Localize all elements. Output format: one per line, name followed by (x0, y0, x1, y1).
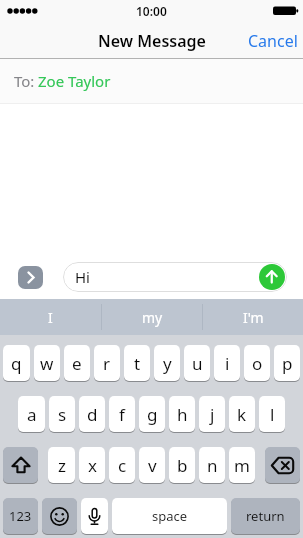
staticText: a (27, 403, 37, 426)
button[interactable] (265, 447, 300, 483)
button[interactable]: p (274, 345, 300, 381)
button[interactable]: k (229, 396, 255, 432)
button[interactable] (81, 498, 108, 534)
button[interactable]: Cancel (240, 25, 303, 58)
button[interactable]: l (259, 396, 285, 432)
button[interactable] (18, 266, 43, 289)
staticText: f (119, 403, 125, 426)
button[interactable]: y (154, 345, 180, 381)
button[interactable]: j (199, 396, 225, 432)
staticText: Hi (75, 267, 90, 287)
staticText: q (11, 352, 22, 375)
button[interactable]: b (169, 447, 195, 483)
button[interactable]: z (48, 447, 75, 483)
staticText: n (207, 454, 218, 477)
button[interactable]: m (229, 447, 255, 483)
button[interactable]: I'm (203, 299, 303, 335)
staticText: m (234, 454, 250, 477)
staticText: d (87, 403, 98, 426)
staticText: s (58, 403, 67, 426)
button[interactable]: return (231, 498, 300, 534)
button[interactable]: d (79, 396, 105, 432)
staticText: Zoe Taylor (38, 71, 111, 91)
button[interactable]: r (94, 345, 120, 381)
button[interactable] (42, 498, 77, 534)
staticText: my (142, 308, 163, 327)
button[interactable]: w (34, 345, 60, 381)
staticText: I'm (243, 308, 264, 327)
button[interactable]: u (184, 345, 210, 381)
staticText: i (225, 352, 230, 375)
staticText: y (163, 352, 172, 375)
button[interactable] (3, 447, 38, 483)
staticText: u (192, 352, 203, 375)
button[interactable]: t (124, 345, 150, 381)
staticText: return (246, 507, 285, 525)
staticText: z (58, 454, 66, 477)
button[interactable]: x (79, 447, 105, 483)
staticText: To: (14, 71, 35, 91)
staticText: o (252, 352, 263, 375)
staticText: t (134, 352, 141, 375)
staticText: e (72, 352, 82, 375)
staticText: b (177, 454, 188, 477)
button[interactable]: I (0, 299, 101, 335)
button[interactable]: q (3, 345, 30, 381)
button[interactable]: i (214, 345, 240, 381)
button[interactable]: e (64, 345, 90, 381)
staticText: j (210, 403, 215, 426)
button[interactable]: h (169, 396, 195, 432)
staticText: 123 (9, 507, 32, 525)
button[interactable] (259, 264, 285, 290)
staticText: w (40, 352, 54, 375)
button[interactable]: 123 (3, 498, 38, 534)
button[interactable]: g (139, 396, 165, 432)
staticText: h (177, 403, 188, 426)
button[interactable]: s (49, 396, 75, 432)
button[interactable]: v (139, 447, 165, 483)
staticText: g (147, 403, 158, 426)
button[interactable]: n (199, 447, 225, 483)
button[interactable]: o (244, 345, 270, 381)
staticText: x (88, 454, 97, 477)
staticText: space (152, 507, 188, 525)
button[interactable]: To: (0, 59, 303, 103)
staticText: v (148, 454, 157, 477)
staticText: 10:00 (136, 3, 167, 19)
button[interactable]: space (112, 498, 227, 534)
staticText: I (48, 308, 53, 327)
button[interactable]: c (109, 447, 135, 483)
staticText: Cancel (248, 30, 298, 52)
button[interactable]: f (109, 396, 135, 432)
staticText: r (103, 352, 111, 375)
staticText: New Message (98, 30, 206, 52)
staticText: c (118, 454, 127, 477)
staticText: k (237, 403, 247, 426)
button[interactable]: a (18, 396, 45, 432)
button[interactable]: my (102, 299, 202, 335)
staticText: p (282, 352, 293, 375)
staticText: l (270, 403, 275, 426)
